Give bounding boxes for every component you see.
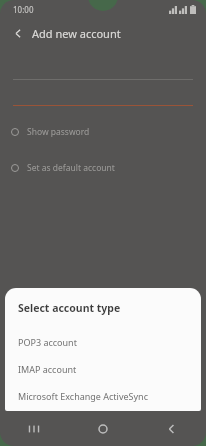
button[interactable]: IMAP account <box>5 355 201 382</box>
button[interactable]: POP3 account <box>5 328 201 355</box>
staticText: Show password <box>27 126 90 138</box>
button[interactable]: Set as default account <box>0 158 206 178</box>
staticText: Set as default account <box>27 162 115 174</box>
staticText: Microsoft Exchange ActiveSync <box>18 390 148 402</box>
button[interactable]: Back <box>8 23 28 43</box>
button[interactable]: Show password <box>0 122 206 142</box>
button[interactable]: Home <box>68 411 137 446</box>
button[interactable]: Back <box>137 411 206 446</box>
button[interactable]: Microsoft Exchange ActiveSync <box>5 382 201 409</box>
staticText: IMAP account <box>18 363 77 375</box>
staticText: 10:00 <box>13 4 34 15</box>
button[interactable]: Recents <box>0 411 68 446</box>
staticText: POP3 account <box>18 336 77 348</box>
staticText: Add new account <box>32 26 121 41</box>
staticText: Select account type <box>18 301 121 315</box>
